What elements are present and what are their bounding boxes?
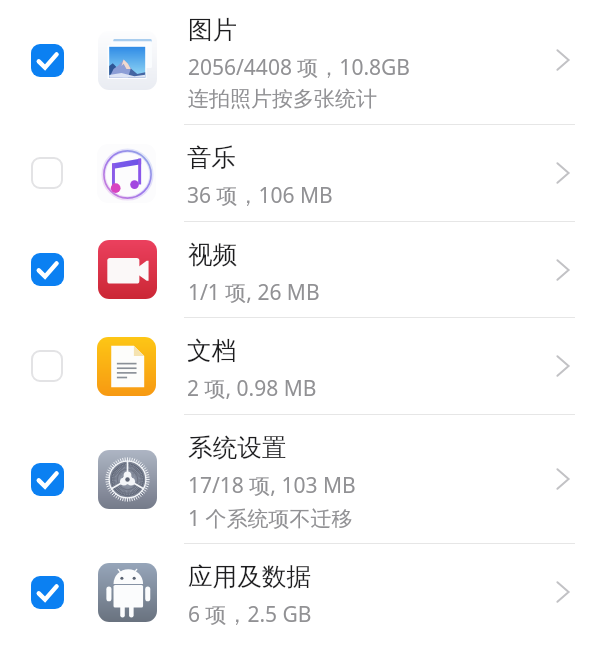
- staticText: 音乐: [187, 142, 237, 173]
- other: More: [556, 161, 570, 185]
- staticText: 视频: [188, 239, 238, 270]
- button[interactable]: Not selected: [31, 350, 63, 382]
- other: More: [556, 467, 570, 491]
- other: More: [556, 48, 570, 72]
- button[interactable]: Selected: [0, 0, 600, 124]
- staticText: 36 项，106 MB: [187, 181, 333, 210]
- staticText: 应用及数据: [188, 561, 311, 592]
- staticText: 文档: [187, 335, 237, 366]
- other: More: [556, 580, 570, 604]
- button[interactable]: Selected: [0, 544, 600, 640]
- other: More: [556, 354, 570, 378]
- button[interactable]: Not selected: [0, 318, 600, 414]
- other: More: [556, 258, 570, 282]
- staticText: 图片: [188, 14, 238, 45]
- staticText: 2056/4408 项，10.8GB: [188, 53, 410, 82]
- button[interactable]: Not selected: [31, 157, 63, 189]
- button[interactable]: Selected: [31, 463, 64, 496]
- staticText: 17/18 项, 103 MB: [188, 471, 356, 500]
- button[interactable]: Selected: [0, 415, 600, 543]
- button[interactable]: Selected: [31, 253, 64, 286]
- button[interactable]: Selected: [31, 576, 64, 609]
- staticText: 连拍照片按多张统计: [188, 86, 377, 112]
- staticText: 2 项, 0.98 MB: [187, 374, 317, 403]
- button[interactable]: Selected: [31, 44, 64, 77]
- staticText: 1/1 项, 26 MB: [188, 278, 320, 307]
- staticText: 1 个系统项不迁移: [188, 504, 353, 533]
- button[interactable]: Selected: [0, 222, 600, 317]
- staticText: 系统设置: [188, 432, 287, 463]
- staticText: 6 项，2.5 GB: [188, 600, 312, 629]
- button[interactable]: Not selected: [0, 125, 600, 221]
